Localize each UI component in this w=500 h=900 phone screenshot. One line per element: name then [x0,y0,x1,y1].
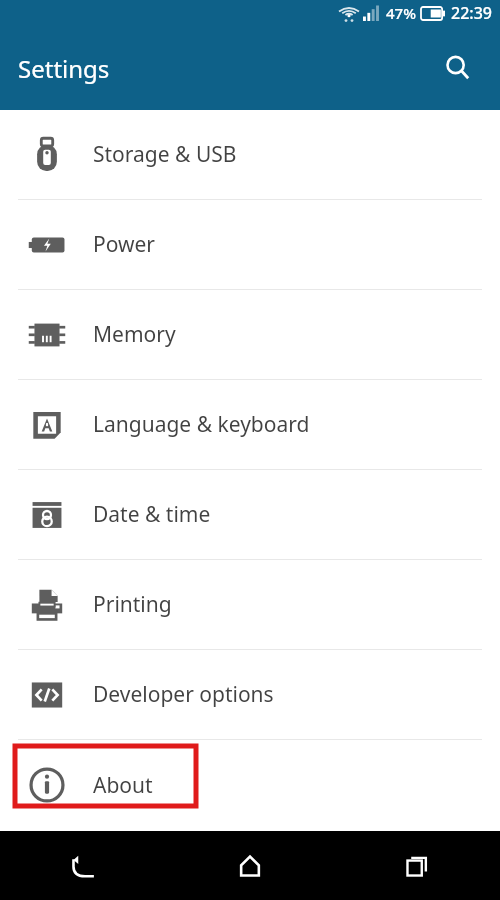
staticText: Settings [18,52,110,85]
staticText: Memory [93,320,176,349]
button[interactable]: Printing [0,560,500,649]
button[interactable]: Memory [0,290,500,379]
staticText: 22:39 [451,2,492,24]
button[interactable]: Storage & USB [0,110,500,199]
button[interactable]: Language & keyboard [0,380,500,469]
button[interactable]: Search [436,46,480,90]
staticText: Storage & USB [93,140,237,169]
button[interactable]: Home [166,831,333,900]
button[interactable]: Power [0,200,500,289]
staticText: Developer options [93,680,274,709]
staticText: About [93,771,153,800]
staticText: Power [93,230,156,259]
button[interactable]: Date & time [0,470,500,559]
staticText: 47% [386,3,416,23]
button[interactable]: Developer options [0,650,500,739]
staticText: Language & keyboard [93,410,310,439]
staticText: Printing [93,590,172,619]
staticText: Date & time [93,500,211,529]
button[interactable]: About [0,740,500,830]
button[interactable]: Recent apps [333,831,500,900]
button[interactable]: Back [0,831,166,900]
